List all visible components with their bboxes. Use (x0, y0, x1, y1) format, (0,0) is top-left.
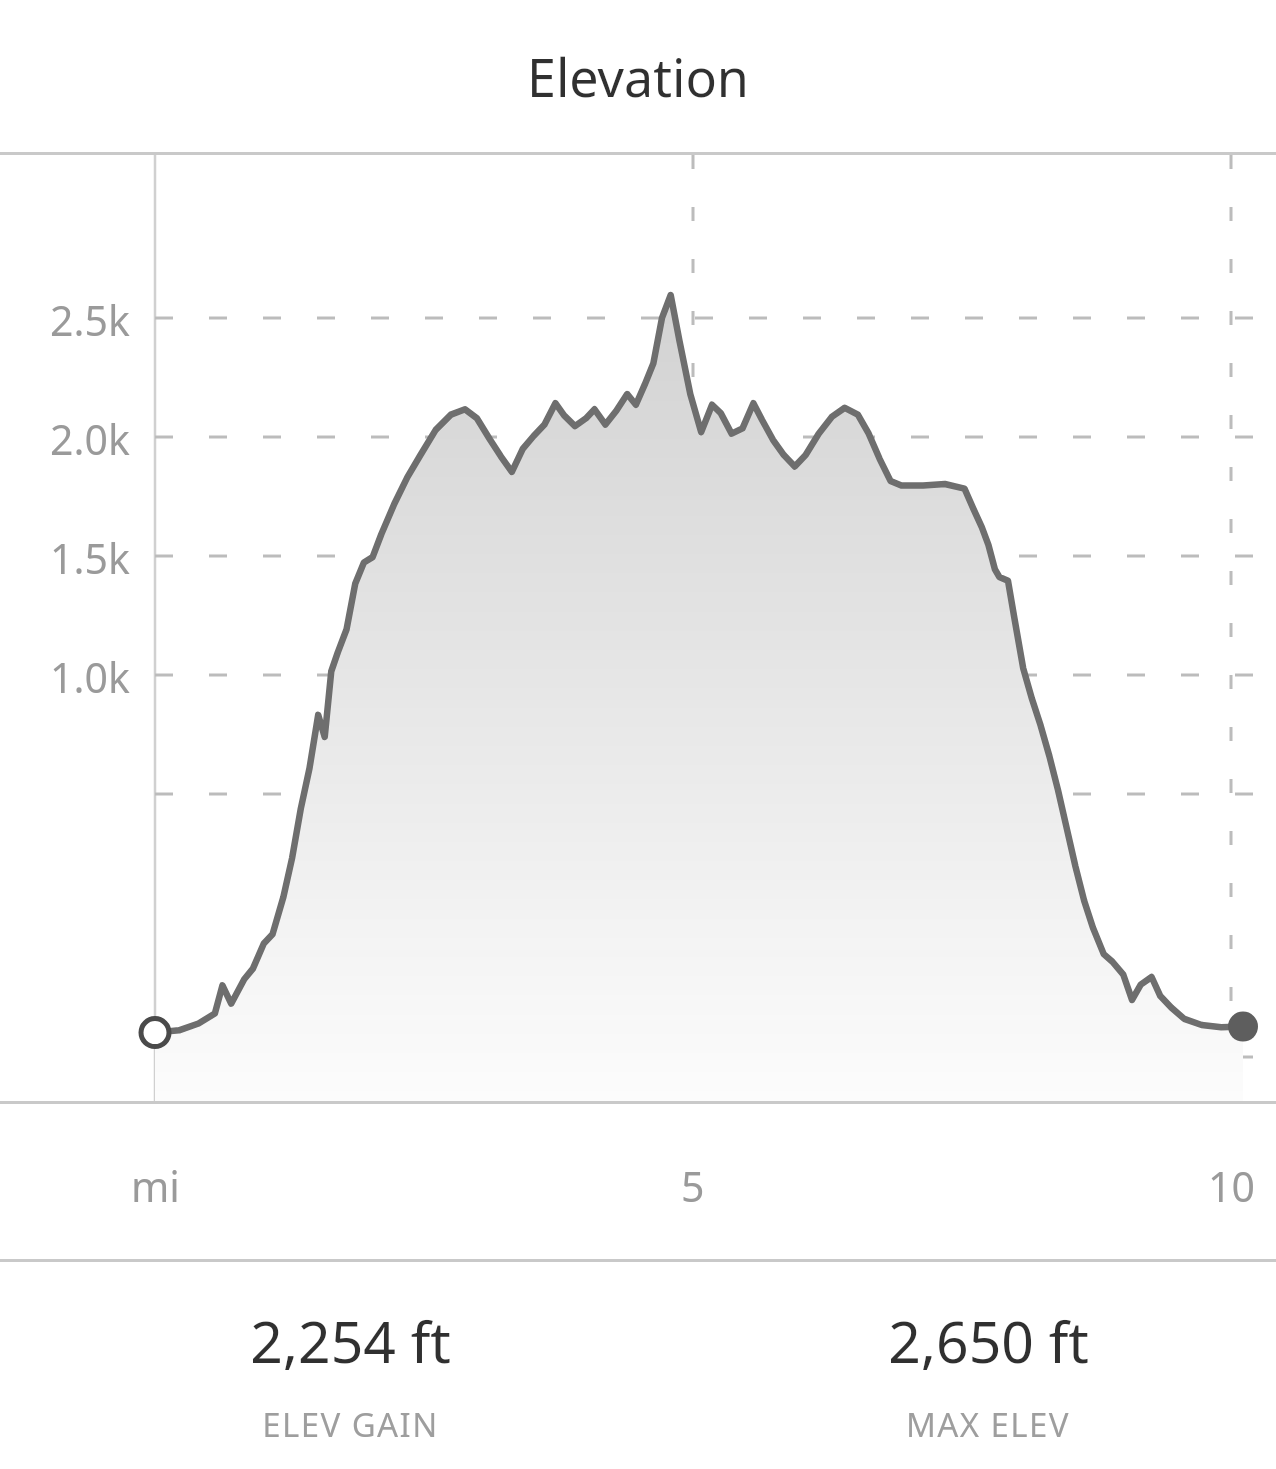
staticText: 1.5k (50, 530, 130, 582)
staticText: mi (131, 1158, 180, 1210)
staticText: Elevation (527, 41, 749, 112)
staticText: 1.0k (50, 649, 130, 701)
staticText: 2,254 ft (250, 1302, 451, 1380)
staticText: 2,650 ft (888, 1302, 1089, 1380)
staticText: 2.5k (50, 292, 130, 344)
staticText: 2.0k (50, 411, 130, 463)
button[interactable]: 2,254 ft (0, 1262, 700, 1467)
staticText: MAX ELEV (906, 1402, 1070, 1447)
staticText: 10 (1208, 1158, 1255, 1210)
staticText: 5 (681, 1158, 705, 1210)
button[interactable]: 2,650 ft (700, 1262, 1276, 1467)
button[interactable]: Elevation (0, 0, 1276, 152)
staticText: ELEV GAIN (262, 1402, 439, 1447)
